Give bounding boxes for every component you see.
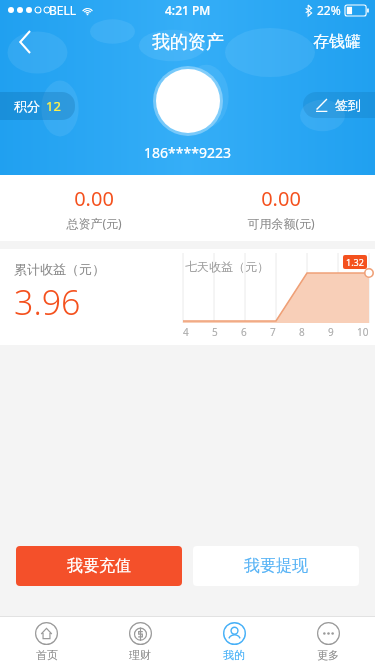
- staticText: 积分: [14, 98, 40, 114]
- staticText: 理财: [129, 648, 151, 662]
- staticText: 4:21 PM: [165, 2, 211, 18]
- staticText: 我的: [223, 648, 245, 662]
- button[interactable]: 累计收益（元）: [0, 249, 183, 345]
- staticText: 10: [357, 325, 369, 339]
- staticText: 186****9223: [144, 143, 231, 162]
- staticText: 4: [183, 325, 189, 339]
- staticText: 我要充值: [67, 556, 131, 576]
- button[interactable]: Back: [0, 20, 50, 64]
- staticText: 1.32: [346, 256, 364, 268]
- staticText: 可用余额(元): [247, 215, 315, 231]
- button[interactable]: 我的: [187, 617, 281, 667]
- staticText: 首页: [36, 648, 58, 662]
- staticText: 5: [212, 325, 218, 339]
- staticText: 我要提现: [244, 556, 308, 576]
- staticText: 总资产(元): [66, 215, 122, 231]
- staticText: 我的资产: [152, 31, 224, 54]
- button[interactable]: 我要充值: [16, 546, 182, 586]
- staticText: 6: [241, 325, 247, 339]
- button[interactable]: Seven day earnings chart: [183, 253, 369, 339]
- staticText: 3.96: [14, 279, 81, 325]
- button[interactable]: 签到: [303, 92, 375, 118]
- button[interactable]: 首页: [0, 617, 93, 667]
- staticText: 累计收益（元）: [14, 261, 105, 277]
- button[interactable]: 我要提现: [193, 546, 359, 586]
- staticText: 七天收益（元）: [185, 259, 269, 274]
- button[interactable]: 更多: [281, 617, 375, 667]
- button[interactable]: 理财: [93, 617, 187, 667]
- staticText: 0.00: [261, 185, 301, 212]
- button[interactable]: 积分: [0, 92, 75, 120]
- staticText: 0.00: [74, 185, 114, 212]
- staticText: 8: [299, 325, 305, 339]
- button[interactable]: 存钱罐: [299, 20, 375, 64]
- staticText: 9: [328, 325, 334, 339]
- staticText: 7: [270, 325, 276, 339]
- staticText: 存钱罐: [313, 32, 361, 52]
- button[interactable]: Avatar: [156, 69, 220, 133]
- button[interactable]: 0.00: [0, 175, 187, 241]
- button[interactable]: 0.00: [187, 175, 375, 241]
- staticText: BELL: [49, 2, 77, 18]
- staticText: 签到: [335, 97, 361, 113]
- staticText: 22%: [317, 2, 341, 18]
- staticText: 12: [46, 97, 61, 115]
- staticText: 更多: [317, 648, 339, 662]
